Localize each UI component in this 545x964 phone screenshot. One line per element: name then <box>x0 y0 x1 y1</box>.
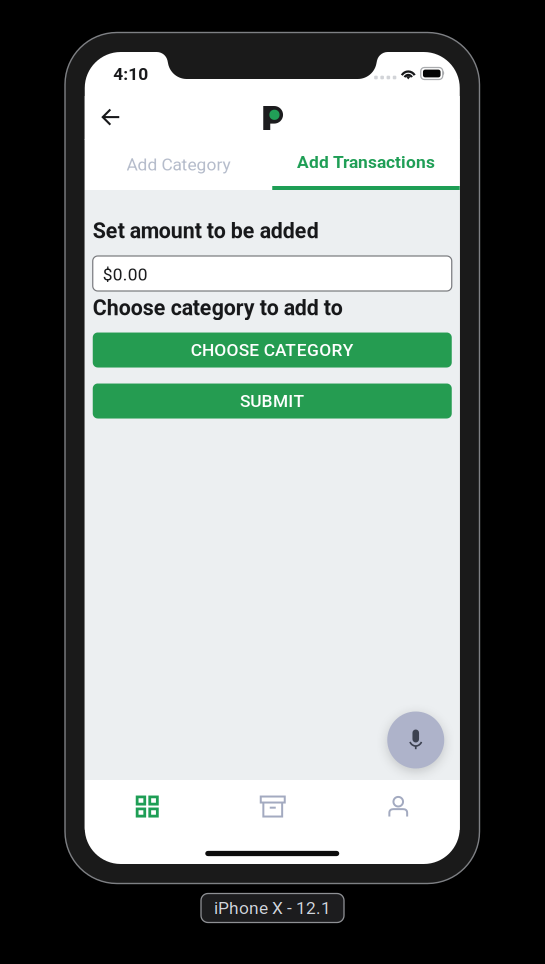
staticText: 4:10 <box>113 64 148 84</box>
button[interactable]: SUBMIT <box>93 383 452 418</box>
button[interactable]: Add Transactions <box>272 139 460 190</box>
button[interactable]: Dashboard <box>85 781 210 831</box>
button[interactable]: Back <box>89 96 133 138</box>
staticText: Add Category <box>126 154 230 175</box>
button[interactable]: Profile <box>336 781 461 831</box>
staticText: SUBMIT <box>240 391 304 411</box>
staticText: CHOOSE CATEGORY <box>191 340 354 360</box>
button[interactable]: Archive <box>210 781 335 831</box>
staticText: Set amount to be added <box>93 218 319 243</box>
button[interactable]: Voice input <box>387 711 444 768</box>
button[interactable]: Add Category <box>85 139 272 190</box>
staticText: $0.00 <box>103 264 148 285</box>
staticText: Add Transactions <box>297 152 435 172</box>
staticText: Choose category to add to <box>93 295 343 320</box>
staticText: iPhone X - 12.1 <box>214 898 331 918</box>
button[interactable]: CHOOSE CATEGORY <box>93 332 452 367</box>
